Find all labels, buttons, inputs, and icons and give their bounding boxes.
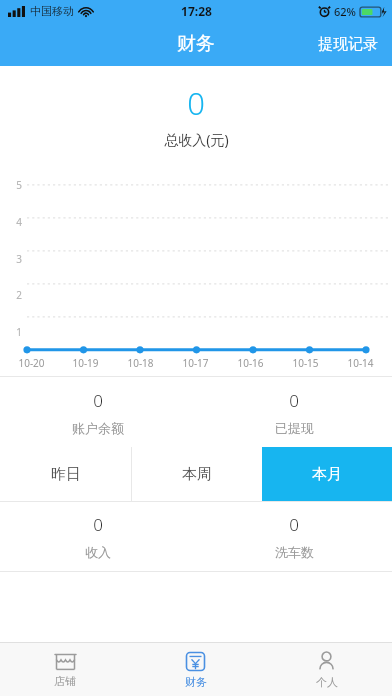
staticText: 10-20: [18, 356, 45, 370]
button[interactable]: 本周: [132, 447, 262, 501]
button[interactable]: 0: [196, 377, 392, 447]
button[interactable]: 提现记录: [304, 27, 392, 62]
staticText: 账户余额: [72, 420, 124, 436]
button[interactable]: 0: [0, 502, 196, 571]
staticText: 收入: [85, 544, 111, 560]
staticText: 个人: [316, 675, 338, 689]
staticText: 1: [16, 325, 22, 339]
staticText: 10-18: [127, 356, 154, 370]
staticText: 昨日: [51, 465, 81, 484]
staticText: 10-17: [182, 356, 209, 370]
staticText: 5: [16, 178, 22, 192]
staticText: 10-16: [237, 356, 264, 370]
staticText: 10-14: [347, 356, 374, 370]
staticText: 已提现: [275, 420, 314, 436]
staticText: 4: [16, 215, 22, 229]
staticText: 0: [289, 389, 299, 412]
button[interactable]: 个人: [261, 643, 392, 696]
button[interactable]: 店铺: [0, 643, 130, 696]
staticText: 洗车数: [275, 544, 314, 560]
button[interactable]: 昨日: [0, 447, 131, 501]
staticText: 总收入(元): [164, 130, 229, 149]
button[interactable]: 0: [196, 502, 392, 571]
staticText: 店铺: [54, 674, 76, 688]
staticText: 中国移动: [30, 4, 74, 18]
staticText: 0: [93, 389, 103, 412]
staticText: 财务: [185, 675, 207, 689]
staticText: 0: [93, 513, 103, 536]
staticText: 本周: [182, 465, 212, 484]
staticText: 62%: [334, 4, 356, 19]
staticText: 提现记录: [318, 35, 378, 54]
staticText: 3: [16, 252, 22, 266]
button[interactable]: 0: [0, 377, 196, 447]
button[interactable]: 本月: [262, 447, 392, 501]
staticText: 2: [16, 288, 22, 302]
staticText: 10-19: [72, 356, 99, 370]
staticText: 0: [289, 513, 299, 536]
button[interactable]: 财务: [130, 643, 261, 696]
staticText: 本月: [312, 465, 342, 484]
staticText: 10-15: [292, 356, 319, 370]
staticText: 17:28: [181, 3, 212, 19]
staticText: 0: [187, 82, 205, 124]
staticText: 财务: [177, 32, 215, 56]
